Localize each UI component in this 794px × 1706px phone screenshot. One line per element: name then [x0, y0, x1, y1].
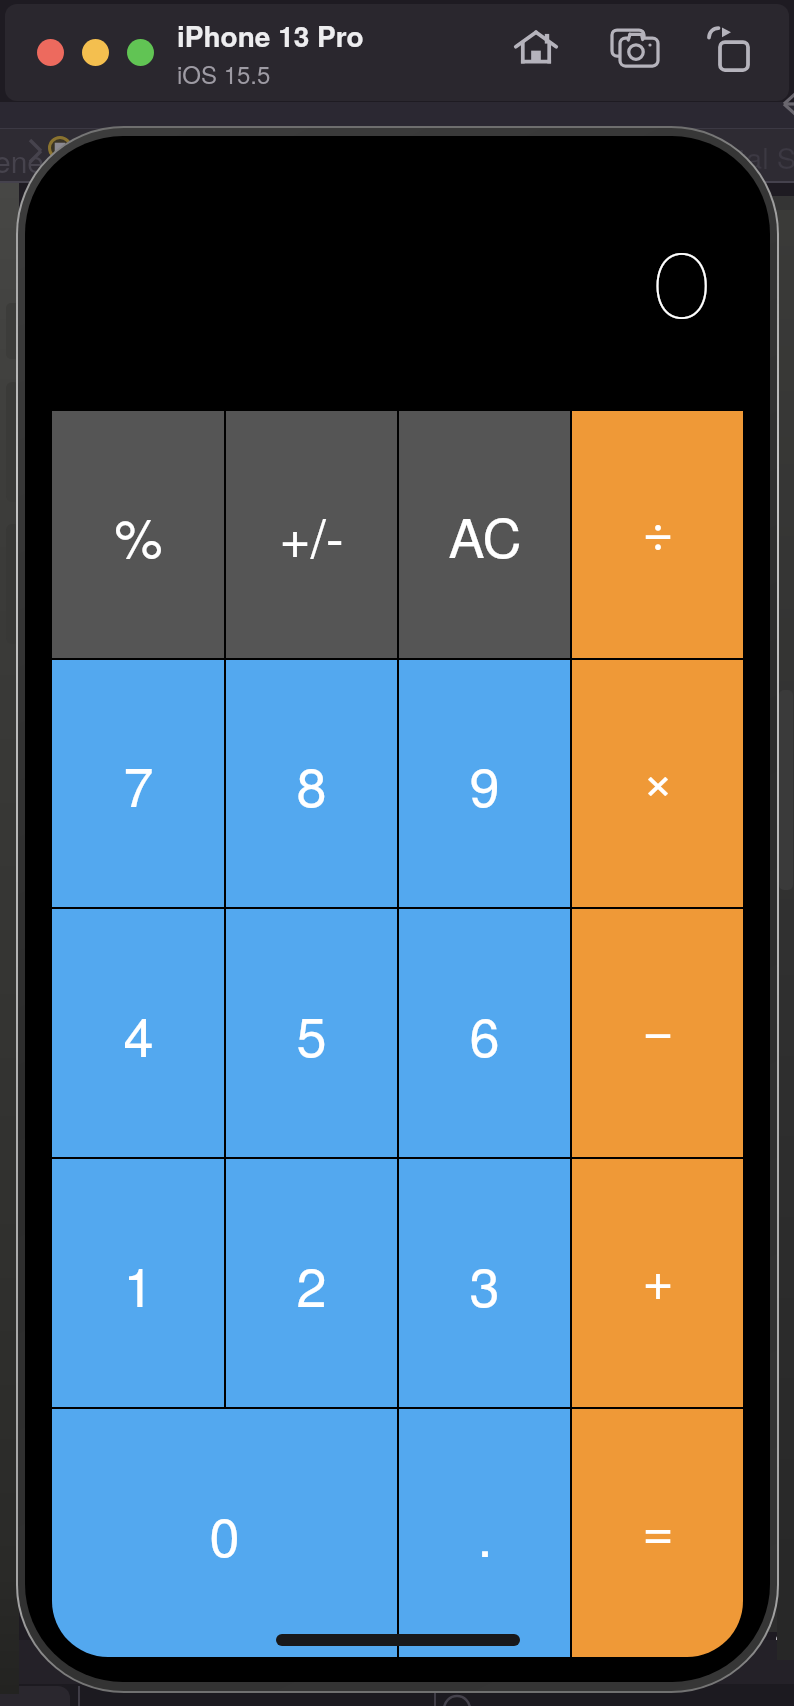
- staticText: 1: [123, 1245, 154, 1322]
- staticText: 9: [469, 745, 500, 822]
- staticText: iPhone 13 Pro: [177, 15, 364, 55]
- staticText: AC: [448, 496, 522, 573]
- button[interactable]: 4: [52, 909, 224, 1157]
- button[interactable]: +/-: [226, 411, 397, 658]
- staticText: 3: [469, 1245, 500, 1322]
- button[interactable]: [82, 39, 109, 66]
- button[interactable]: Screenshot: [606, 19, 664, 77]
- staticText: −: [642, 988, 674, 1065]
- staticText: .: [477, 1495, 493, 1572]
- button[interactable]: 2: [226, 1159, 397, 1407]
- button[interactable]: 6: [399, 909, 570, 1157]
- button[interactable]: Home: [507, 19, 565, 77]
- button[interactable]: ÷: [572, 411, 743, 658]
- staticText: ÷: [642, 489, 674, 566]
- button[interactable]: .: [399, 1409, 570, 1657]
- button[interactable]: 5: [226, 909, 397, 1157]
- button[interactable]: Rotate: [699, 19, 757, 77]
- button[interactable]: −: [572, 909, 743, 1157]
- staticText: +/-: [279, 496, 344, 573]
- staticText: iOS 15.5: [177, 56, 271, 90]
- button[interactable]: 0: [52, 1409, 397, 1657]
- button[interactable]: [127, 39, 154, 66]
- button[interactable]: ×: [572, 660, 743, 907]
- staticText: 0: [209, 1495, 240, 1572]
- staticText: tal St: [738, 136, 794, 178]
- button[interactable]: 3: [399, 1159, 570, 1407]
- staticText: 6: [469, 995, 500, 1072]
- staticText: 2: [296, 1245, 327, 1322]
- button[interactable]: 7: [52, 660, 224, 907]
- staticText: 7: [123, 745, 154, 822]
- button[interactable]: 8: [226, 660, 397, 907]
- staticText: +: [642, 1238, 674, 1315]
- staticText: =: [642, 1488, 674, 1565]
- staticText: %: [114, 496, 163, 573]
- staticText: 0: [651, 228, 713, 343]
- staticText: 8: [296, 745, 327, 822]
- button[interactable]: %: [52, 411, 224, 658]
- staticText: 5: [296, 995, 327, 1072]
- button[interactable]: 1: [52, 1159, 224, 1407]
- staticText: ar: [774, 1600, 794, 1660]
- staticText: 4: [123, 995, 154, 1072]
- staticText: ene: [0, 139, 45, 182]
- button[interactable]: =: [572, 1409, 743, 1657]
- staticText: ×: [642, 738, 674, 815]
- button[interactable]: [37, 39, 64, 66]
- button[interactable]: AC: [399, 411, 570, 658]
- button[interactable]: +: [572, 1159, 743, 1407]
- button[interactable]: 9: [399, 660, 570, 907]
